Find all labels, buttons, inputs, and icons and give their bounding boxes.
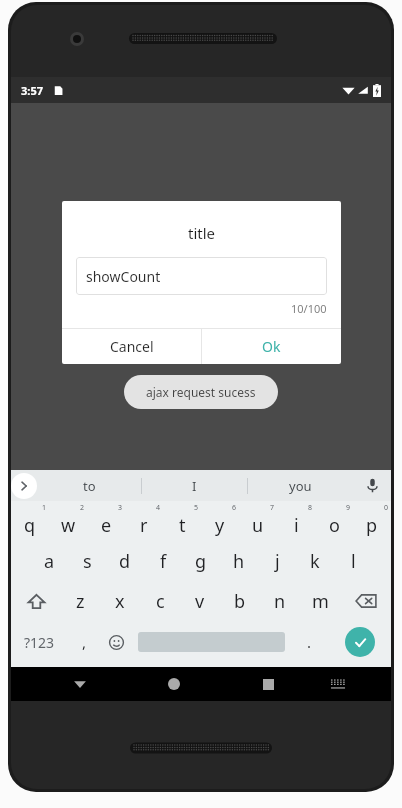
staticText: , <box>82 632 87 652</box>
staticText: p <box>366 513 378 538</box>
staticText: c <box>156 589 165 614</box>
button[interactable]: I <box>142 470 247 501</box>
staticText: 10/100 <box>291 301 327 316</box>
staticText: q <box>24 513 36 538</box>
staticText: b <box>234 589 246 614</box>
staticText: w <box>61 513 76 538</box>
button[interactable]: m <box>300 581 340 621</box>
staticText: showCount <box>86 267 161 286</box>
button[interactable]: showCount <box>76 257 327 295</box>
button[interactable]: h <box>220 541 258 581</box>
button[interactable]: d <box>106 541 144 581</box>
button[interactable]: Home <box>154 667 194 701</box>
button[interactable]: 5 <box>163 501 201 541</box>
button[interactable]: Recents <box>248 667 288 701</box>
staticText: you <box>289 477 312 495</box>
staticText: n <box>274 589 286 614</box>
staticText: h <box>233 549 245 574</box>
button[interactable]: 0 <box>353 501 391 541</box>
staticText: t <box>179 513 186 538</box>
button[interactable]: 4 <box>125 501 163 541</box>
staticText: m <box>312 589 329 614</box>
staticText: 1 <box>42 503 47 513</box>
staticText: s <box>83 549 92 574</box>
staticText: 3 <box>118 503 123 513</box>
staticText: i <box>294 513 299 538</box>
staticText: l <box>351 549 356 574</box>
button[interactable]: Cancel <box>62 329 201 364</box>
staticText: Cancel <box>110 337 154 356</box>
button[interactable]: s <box>68 541 106 581</box>
button[interactable]: Ok <box>202 329 341 364</box>
staticText: x <box>115 589 125 614</box>
button[interactable]: . <box>289 621 329 663</box>
button[interactable]: 7 <box>239 501 277 541</box>
staticText: Ok <box>262 337 281 356</box>
staticText: to <box>83 477 96 495</box>
staticText: e <box>101 513 112 538</box>
staticText: 3:57 <box>21 83 43 98</box>
staticText: z <box>76 589 85 614</box>
button[interactable]: 3 <box>87 501 125 541</box>
button[interactable]: to <box>37 470 141 501</box>
button[interactable]: 2 <box>49 501 87 541</box>
button[interactable]: n <box>260 581 300 621</box>
button[interactable]: c <box>140 581 180 621</box>
staticText: 2 <box>80 503 85 513</box>
staticText: 8 <box>308 503 313 513</box>
staticText: I <box>192 477 197 495</box>
button[interactable]: f <box>144 541 182 581</box>
button[interactable]: Hide keyboard <box>60 667 100 701</box>
staticText: v <box>195 589 205 614</box>
button[interactable]: Enter <box>345 627 375 657</box>
staticText: r <box>140 513 148 538</box>
button[interactable]: 6 <box>201 501 239 541</box>
button[interactable]: b <box>220 581 260 621</box>
button[interactable]: Shift <box>11 581 61 621</box>
button[interactable]: Backspace <box>340 581 391 621</box>
staticText: f <box>160 549 167 574</box>
staticText: j <box>275 549 280 574</box>
button[interactable]: Voice input <box>353 470 391 501</box>
button[interactable]: g <box>182 541 220 581</box>
staticText: g <box>195 549 207 574</box>
staticText: o <box>329 513 340 538</box>
button[interactable]: k <box>296 541 334 581</box>
button[interactable]: Emoji <box>100 621 133 663</box>
button[interactable]: Switch keyboard <box>318 667 358 701</box>
button[interactable]: 8 <box>277 501 315 541</box>
staticText: 7 <box>270 503 275 513</box>
staticText: 4 <box>156 503 161 513</box>
button[interactable]: , <box>68 621 100 663</box>
button[interactable]: 1 <box>11 501 49 541</box>
button[interactable]: 9 <box>315 501 353 541</box>
staticText: 0 <box>384 503 389 513</box>
staticText: 6 <box>232 503 237 513</box>
button[interactable]: a <box>30 541 68 581</box>
button[interactable]: x <box>100 581 140 621</box>
staticText: a <box>44 549 55 574</box>
staticText: title <box>188 223 216 243</box>
button[interactable]: More suggestions <box>11 473 37 499</box>
staticText: k <box>310 549 320 574</box>
button[interactable]: v <box>180 581 220 621</box>
staticText: 5 <box>194 503 199 513</box>
button[interactable]: l <box>334 541 372 581</box>
staticText: u <box>252 513 264 538</box>
staticText: ajax request sucess <box>146 384 256 400</box>
button[interactable]: ?123 <box>11 621 68 663</box>
staticText: d <box>119 549 131 574</box>
button[interactable]: j <box>258 541 296 581</box>
staticText: y <box>215 513 225 538</box>
staticText: ?123 <box>24 633 55 652</box>
button[interactable]: z <box>61 581 100 621</box>
staticText: . <box>307 632 312 652</box>
button[interactable]: you <box>248 470 353 501</box>
staticText: 9 <box>346 503 351 513</box>
